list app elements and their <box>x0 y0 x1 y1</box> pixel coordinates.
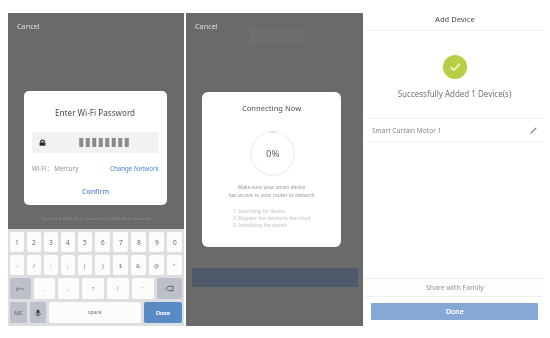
button[interactable]: 4 <box>61 232 75 252</box>
staticText: . <box>44 285 46 292</box>
staticText: 1 <box>15 238 19 247</box>
staticText: Cancel <box>17 21 40 31</box>
staticText: ; <box>67 262 69 269</box>
staticText: Cancel <box>195 21 218 31</box>
staticText: / <box>33 262 36 269</box>
staticText: Connecting Now <box>242 103 302 113</box>
staticText: space <box>88 309 102 316</box>
button[interactable]: $ <box>113 255 128 275</box>
staticText: Done <box>446 307 464 317</box>
button[interactable]: ? <box>82 278 104 299</box>
button[interactable]: 8 <box>131 232 146 252</box>
staticText: 3 <box>49 238 53 247</box>
button[interactable]: ; <box>61 255 75 275</box>
staticText: Enter Wi-Fi Password <box>55 107 136 118</box>
staticText: ' <box>142 285 144 292</box>
staticText: 6 <box>101 238 105 247</box>
other: Edit device name <box>530 127 537 134</box>
staticText: - <box>16 262 18 269</box>
staticText: 0% <box>266 147 280 160</box>
button[interactable]: ' <box>132 278 154 299</box>
staticText: Tip: only 2.4GHz Wi-Fi network of 2.4GHz… <box>8 216 184 222</box>
staticText: Confirm <box>82 187 110 197</box>
staticText: 0 <box>173 238 177 247</box>
button[interactable]: - <box>10 255 24 275</box>
button[interactable]: Change Network <box>110 164 159 172</box>
button[interactable]: 9 <box>149 232 164 252</box>
staticText: Wi-Fi : Mercury <box>32 164 79 172</box>
staticText: 3 Initializing the device <box>233 222 287 229</box>
staticText: 1 Searching for device <box>233 208 285 215</box>
staticText: Successfully Added 1 Device(s) <box>365 88 544 99</box>
staticText: 9 <box>155 238 159 247</box>
staticText: @ <box>154 262 159 269</box>
button[interactable]: 6 <box>95 232 110 252</box>
button[interactable]: ( <box>78 255 92 275</box>
staticText: 2 <box>32 238 36 247</box>
staticText: ? <box>92 285 95 292</box>
staticText: ABC <box>14 310 23 316</box>
button[interactable]: : <box>44 255 58 275</box>
staticText: 5 <box>83 238 87 247</box>
button[interactable]: Smart Curtain Motor 1 <box>372 119 537 141</box>
button[interactable]: , <box>58 278 79 299</box>
button[interactable]: space <box>49 302 141 323</box>
button[interactable]: / <box>27 255 41 275</box>
button[interactable]: ) <box>95 255 110 275</box>
staticText: #+= <box>16 286 25 292</box>
staticText: $ <box>119 262 123 269</box>
button[interactable]: ABC <box>10 302 27 323</box>
button[interactable]: Share with Family <box>365 279 544 296</box>
staticText: & <box>136 262 141 269</box>
button[interactable]: & <box>131 255 146 275</box>
button[interactable]: 2 <box>27 232 41 252</box>
button[interactable]: 7 <box>113 232 128 252</box>
staticText: Smart Curtain Motor 1 <box>372 126 530 135</box>
staticText: ! <box>117 285 119 292</box>
button[interactable]: 3 <box>44 232 58 252</box>
button[interactable]: @ <box>149 255 164 275</box>
button[interactable]: 1 <box>10 232 24 252</box>
staticText: 4 <box>66 238 70 247</box>
button[interactable]: Done <box>371 303 538 320</box>
staticText: 2 Register the device to the cloud <box>233 215 311 222</box>
button[interactable]: 0 <box>167 232 182 252</box>
button[interactable]: ! <box>107 278 129 299</box>
staticText: Make sure your smart device has access t… <box>202 184 341 198</box>
staticText: Done <box>156 309 170 316</box>
staticText: Share with Family <box>426 283 484 293</box>
staticText: 8 <box>137 238 141 247</box>
button[interactable]: " <box>167 255 182 275</box>
button[interactable]: Done <box>144 302 182 323</box>
staticText: : <box>50 262 52 269</box>
staticText: ( <box>84 262 86 269</box>
button[interactable]: Backspace <box>157 278 182 299</box>
staticText: 7 <box>119 238 123 247</box>
button[interactable]: #+= <box>10 278 31 299</box>
button[interactable]: Voice input <box>30 302 46 323</box>
button[interactable]: 5 <box>78 232 92 252</box>
button[interactable]: . <box>34 278 55 299</box>
button[interactable]: Cancel <box>17 21 40 31</box>
staticText: ) <box>102 262 104 269</box>
staticText: " <box>173 262 176 269</box>
button[interactable]: Confirm <box>24 186 167 198</box>
button[interactable]: Cancel <box>195 21 218 31</box>
staticText: , <box>68 285 70 292</box>
staticText: Add Device <box>435 14 475 24</box>
